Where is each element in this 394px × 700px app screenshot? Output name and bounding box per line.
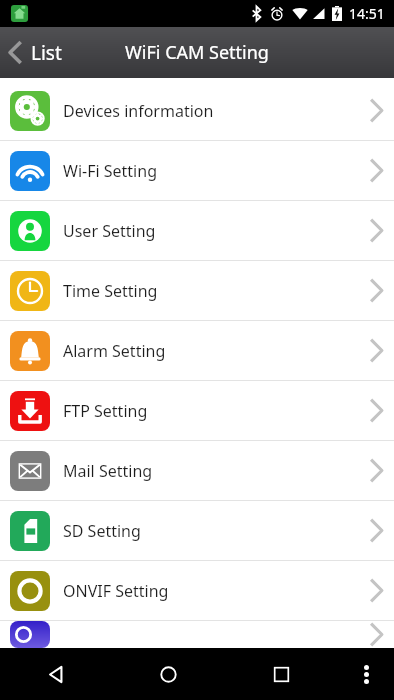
staticText: Devices information — [63, 100, 214, 122]
staticText: FTP Setting — [63, 400, 148, 422]
button[interactable]: Recent apps — [225, 648, 338, 700]
button[interactable] — [0, 621, 394, 648]
staticText: User Setting — [63, 220, 156, 242]
button[interactable]: Devices information — [0, 81, 394, 140]
button[interactable]: Home — [112, 648, 225, 700]
button[interactable]: ONVIF Setting — [0, 561, 394, 620]
staticText: Alarm Setting — [63, 340, 166, 362]
button[interactable]: Back — [0, 648, 112, 700]
button[interactable]: Alarm Setting — [0, 321, 394, 380]
button[interactable]: User Setting — [0, 201, 394, 260]
button[interactable]: Time Setting — [0, 261, 394, 320]
button[interactable]: More options — [338, 648, 394, 700]
button[interactable]: List — [0, 27, 76, 78]
button[interactable]: Wi-Fi Setting — [0, 141, 394, 200]
staticText: ONVIF Setting — [63, 580, 169, 602]
staticText: List — [31, 40, 62, 66]
staticText: Time Setting — [63, 280, 158, 302]
staticText: WiFi CAM Setting — [125, 40, 269, 65]
staticText: 14:51 — [349, 4, 385, 23]
staticText: SD Setting — [63, 520, 141, 542]
button[interactable]: SD Setting — [0, 501, 394, 560]
button[interactable]: Mail Setting — [0, 441, 394, 500]
staticText: Wi-Fi Setting — [63, 160, 157, 182]
button[interactable]: FTP Setting — [0, 381, 394, 440]
staticText: Mail Setting — [63, 460, 153, 482]
